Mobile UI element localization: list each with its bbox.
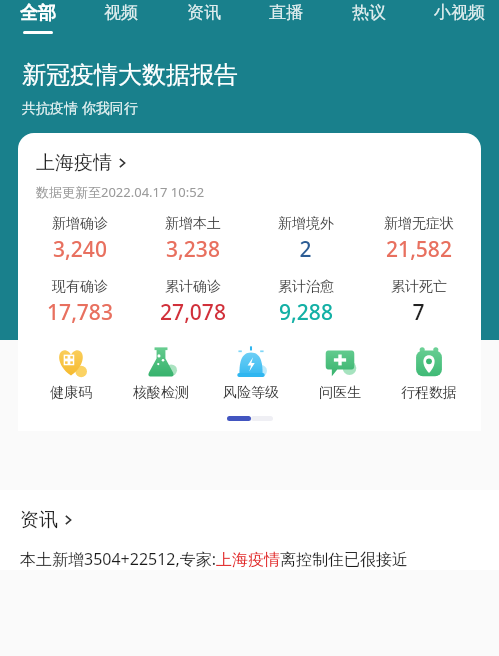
staticText: 数据更新至2022.04.17 10:52	[36, 183, 205, 201]
button[interactable]: 直播	[267, 0, 305, 31]
staticText: 小视频	[434, 2, 485, 23]
button[interactable]: 全部	[18, 0, 58, 36]
staticText: 2	[299, 235, 312, 264]
staticText: 3,238	[166, 235, 220, 264]
staticText: 27,078	[160, 298, 226, 327]
staticText: 健康码	[50, 384, 92, 402]
button[interactable]: 资讯	[185, 0, 223, 31]
staticText: 上海疫情	[36, 151, 112, 175]
button[interactable]: 风险等级	[206, 345, 295, 402]
staticText: 本土新增3504+22512,专家:上海疫情离控制住已很接近	[20, 548, 409, 570]
staticText: 3,240	[53, 235, 107, 264]
button[interactable]: 资讯	[20, 508, 74, 532]
staticText: 风险等级	[223, 384, 279, 402]
staticText: 新增无症状	[384, 215, 454, 233]
staticText: 累计死亡	[391, 278, 447, 296]
staticText: 17,783	[47, 298, 113, 327]
staticText: 问医生	[319, 384, 361, 402]
button[interactable]: 视频	[102, 0, 140, 31]
staticText: 9,288	[279, 298, 333, 327]
staticText: 新增本土	[165, 215, 221, 233]
staticText: 新增境外	[278, 215, 334, 233]
staticText: 核酸检测	[133, 384, 189, 402]
staticText: 现有确诊	[52, 278, 108, 296]
staticText: 热议	[352, 2, 386, 23]
staticText: 资讯	[20, 508, 58, 532]
staticText: 共抗疫情 你我同行	[22, 98, 138, 117]
staticText: 资讯	[187, 2, 221, 23]
staticText: 行程数据	[401, 384, 457, 402]
button[interactable]: 小视频	[432, 0, 487, 31]
staticText: 视频	[104, 2, 138, 23]
staticText: 累计确诊	[165, 278, 221, 296]
staticText: 全部	[20, 2, 56, 25]
button[interactable]: 问医生	[295, 345, 384, 402]
staticText: 新冠疫情大数据报告	[22, 60, 238, 90]
button[interactable]: 健康码	[26, 345, 116, 402]
staticText: 21,582	[386, 235, 452, 264]
staticText: 7	[412, 298, 425, 327]
staticText: 累计治愈	[278, 278, 334, 296]
button[interactable]: 上海疫情	[18, 133, 481, 431]
button[interactable]: 热议	[350, 0, 388, 31]
staticText: 直播	[269, 2, 303, 23]
button[interactable]: 行程数据	[384, 345, 473, 402]
staticText: 新增确诊	[52, 215, 108, 233]
button[interactable]: 核酸检测	[116, 345, 206, 402]
